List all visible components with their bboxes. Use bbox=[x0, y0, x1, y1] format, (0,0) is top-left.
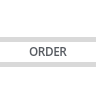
staticText: ORDER bbox=[29, 43, 67, 59]
button[interactable]: ORDER bbox=[0, 41, 96, 62]
